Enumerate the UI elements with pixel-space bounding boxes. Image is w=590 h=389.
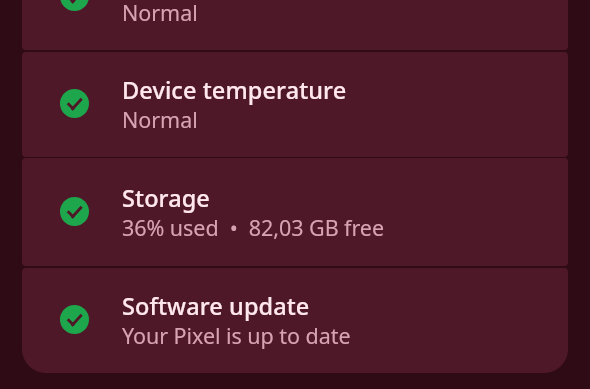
button[interactable]: Status OK xyxy=(22,52,568,157)
button[interactable]: Status OK xyxy=(22,268,568,373)
other: Status OK xyxy=(60,89,89,118)
button[interactable]: Status OK xyxy=(22,0,568,50)
staticText: Normal xyxy=(122,108,198,134)
staticText: Normal xyxy=(122,1,198,27)
staticText: Software update xyxy=(122,295,310,321)
button[interactable]: Status OK xyxy=(22,158,568,266)
staticText: Storage xyxy=(122,187,210,213)
staticText: Your Pixel is up to date xyxy=(122,324,351,350)
staticText: Device temperature xyxy=(122,79,347,105)
staticText: 36% used • 82,03 GB free xyxy=(122,216,384,242)
other: Status OK xyxy=(60,305,89,334)
other: Status OK xyxy=(60,0,89,11)
other: Status OK xyxy=(60,197,89,226)
